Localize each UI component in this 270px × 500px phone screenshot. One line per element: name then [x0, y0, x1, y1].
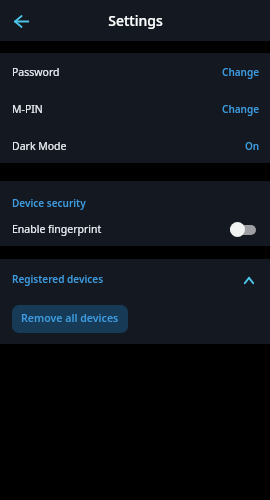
staticText: On	[245, 139, 260, 153]
staticText: Device security	[12, 196, 86, 210]
button[interactable]: Dark Mode	[0, 126, 270, 163]
staticText: Dark Mode	[12, 139, 67, 153]
button[interactable]: M-PIN	[0, 89, 270, 126]
button[interactable]: Back	[8, 7, 36, 35]
other: Collapse registered devices	[244, 277, 254, 284]
staticText: Change	[222, 65, 260, 79]
button[interactable]: Password	[0, 53, 270, 89]
staticText: Registered devices	[12, 272, 104, 286]
staticText: Change	[222, 102, 260, 116]
staticText: Settings	[108, 11, 163, 30]
button[interactable]: Registered devices	[0, 259, 270, 299]
staticText: M-PIN	[12, 102, 43, 116]
button[interactable]: Enable fingerprint	[0, 221, 270, 237]
button[interactable]: Remove all devices	[12, 305, 128, 333]
button[interactable]: Enable fingerprint toggle, off	[230, 222, 256, 237]
staticText: Password	[12, 65, 60, 79]
staticText: Enable fingerprint	[12, 222, 102, 236]
staticText: Remove all devices	[21, 311, 119, 325]
